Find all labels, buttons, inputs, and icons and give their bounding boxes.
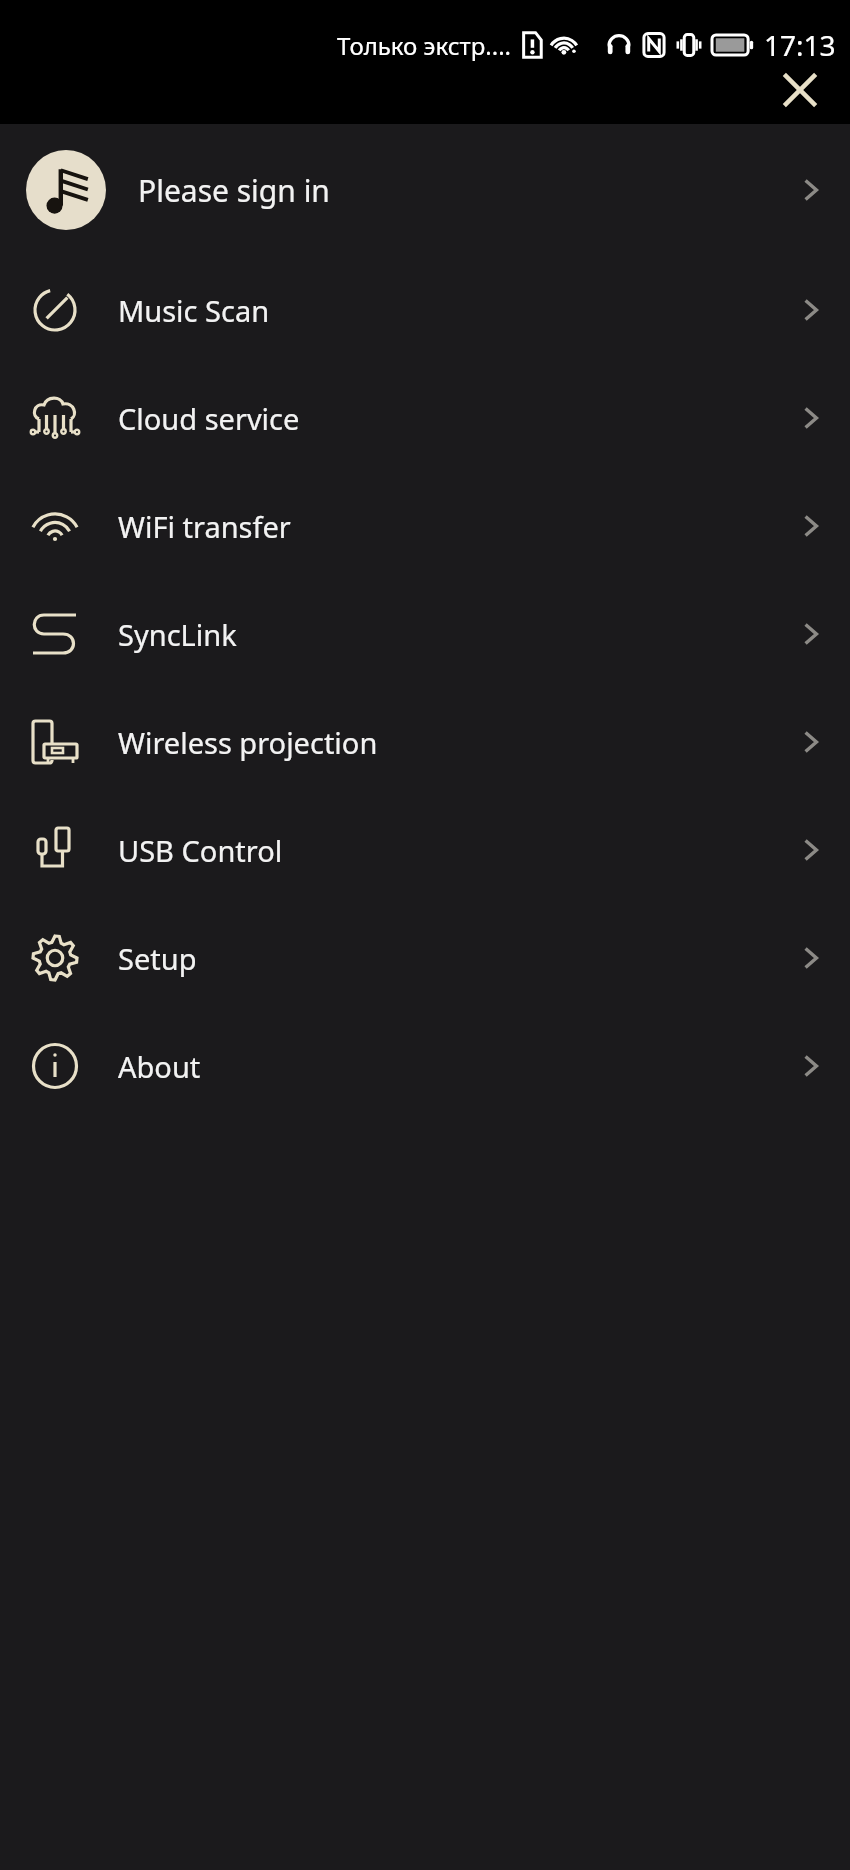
staticText: About xyxy=(118,1047,794,1086)
button[interactable]: Setup xyxy=(0,904,850,1012)
staticText: Music Scan xyxy=(118,291,794,330)
button[interactable]: Music Scan xyxy=(0,256,850,364)
button[interactable]: Cloud service xyxy=(0,364,850,472)
button[interactable]: About xyxy=(0,1012,850,1120)
staticText: Setup xyxy=(118,939,794,978)
staticText: SyncLink xyxy=(118,615,794,654)
staticText: Cloud service xyxy=(118,399,794,438)
button[interactable]: USB Control xyxy=(0,796,850,904)
staticText: USB Control xyxy=(118,831,794,870)
staticText: Только экстр.... xyxy=(337,29,511,62)
staticText: Wireless projection xyxy=(118,723,794,762)
button[interactable]: SyncLink xyxy=(0,580,850,688)
staticText: 17:13 xyxy=(764,26,836,64)
staticText: WiFi transfer xyxy=(118,507,794,546)
button[interactable]: Close xyxy=(772,62,828,118)
staticText: Please sign in xyxy=(138,170,794,211)
button[interactable]: Wireless projection xyxy=(0,688,850,796)
button[interactable]: Please sign in xyxy=(0,124,850,256)
button[interactable]: WiFi transfer xyxy=(0,472,850,580)
